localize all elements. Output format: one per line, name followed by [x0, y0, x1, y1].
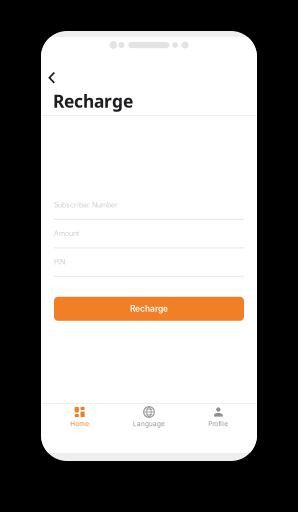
staticText: Profile — [208, 420, 228, 428]
staticText: PIN — [54, 258, 65, 266]
button[interactable]: PIN — [54, 255, 244, 277]
staticText: Subscriber Number — [54, 201, 118, 209]
staticText: Amount — [54, 229, 79, 238]
staticText: Home — [70, 420, 89, 428]
staticText: Recharge — [130, 304, 168, 314]
staticText: Language — [133, 420, 165, 428]
button[interactable]: Back — [48, 72, 62, 83]
button[interactable]: Recharge — [54, 297, 244, 321]
button[interactable]: Profile — [184, 406, 253, 429]
staticText: Recharge — [53, 89, 133, 112]
button[interactable]: Amount — [54, 226, 244, 248]
button[interactable]: Language — [114, 406, 184, 429]
button[interactable]: Home — [45, 406, 114, 429]
button[interactable]: Subscriber Number — [54, 198, 244, 220]
